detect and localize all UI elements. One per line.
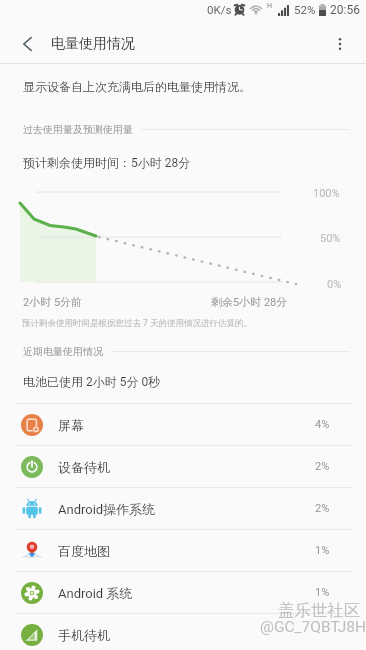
- staticText: 0K/s: [207, 3, 232, 16]
- button[interactable]: More options: [320, 24, 360, 64]
- staticText: 1%: [315, 544, 330, 557]
- staticText: 2%: [315, 502, 330, 515]
- staticText: 0%: [327, 278, 342, 291]
- button[interactable]: Android 系统: [0, 572, 366, 613]
- button[interactable]: 手机待机: [0, 614, 366, 650]
- staticText: 1%: [315, 586, 330, 599]
- staticText: Android 系统: [58, 585, 133, 601]
- button[interactable]: 百度地图: [0, 530, 366, 571]
- button[interactable]: 设备待机: [0, 446, 366, 487]
- staticText: 盖乐世社区: [278, 600, 361, 621]
- button[interactable]: Back: [8, 24, 48, 64]
- staticText: 电量使用情况: [51, 35, 135, 53]
- staticText: H: [267, 2, 272, 10]
- staticText: 显示设备自上次充满电后的电量使用情况。: [23, 79, 251, 94]
- button[interactable]: 屏幕: [0, 404, 366, 445]
- staticText: Android操作系统: [58, 501, 156, 517]
- staticText: 屏幕: [58, 417, 84, 433]
- staticText: 2%: [315, 460, 330, 473]
- staticText: 剩余5小时 28分: [211, 295, 288, 309]
- staticText: 20:56: [330, 3, 360, 17]
- staticText: 电池已使用 2小时 5分 0秒: [23, 374, 161, 389]
- staticText: @GC_7QBTJ8H: [260, 618, 366, 636]
- staticText: 预计剩余使用时间：5小时 28分: [23, 155, 191, 170]
- staticText: 过去使用量及预测使用量: [23, 123, 133, 136]
- staticText: 4%: [315, 418, 330, 431]
- staticText: 52%: [294, 3, 316, 16]
- button[interactable]: Android操作系统: [0, 488, 366, 529]
- staticText: 百度地图: [58, 543, 110, 559]
- staticText: 近期电量使用情况: [23, 345, 103, 358]
- staticText: 手机待机: [58, 627, 110, 643]
- staticText: 设备待机: [58, 459, 110, 475]
- staticText: 50%: [320, 232, 341, 245]
- staticText: 预计剩余使用时间是根据您过去 7 天的使用情况进行估算的。: [22, 318, 252, 329]
- staticText: 2小时 5分前: [23, 295, 83, 309]
- staticText: 100%: [313, 187, 340, 200]
